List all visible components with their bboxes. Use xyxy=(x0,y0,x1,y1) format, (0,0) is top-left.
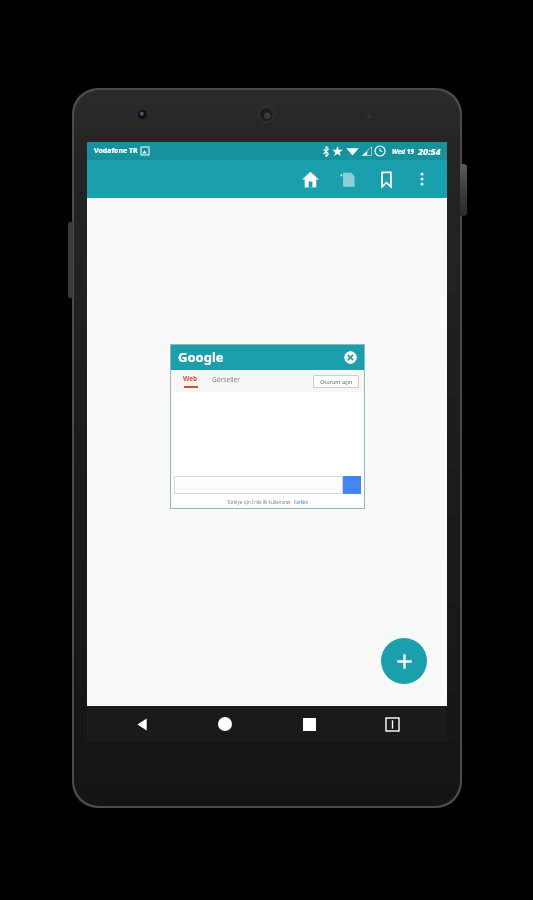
button[interactable]: Add bookmark xyxy=(331,162,365,196)
button[interactable]: Görseller xyxy=(212,375,240,384)
staticText: Wed 19 xyxy=(392,147,415,156)
button[interactable]: Back xyxy=(114,706,170,742)
button[interactable]: More options xyxy=(405,162,439,196)
staticText: Farklılı xyxy=(294,499,308,505)
button[interactable] xyxy=(174,476,343,494)
button[interactable]: Google xyxy=(170,344,365,509)
staticText: Oturum açın xyxy=(320,378,353,385)
staticText: Türkiye için İr'de ilk kullanarak xyxy=(227,499,291,505)
staticText: 20:54 xyxy=(418,145,441,157)
button[interactable]: Close xyxy=(344,351,357,364)
staticText: Web xyxy=(183,374,198,383)
button[interactable]: Home xyxy=(293,162,327,196)
button[interactable]: Oturum açın xyxy=(313,375,359,388)
button[interactable]: Split screen xyxy=(364,706,420,742)
staticText: Vodafone TR xyxy=(94,146,138,156)
button[interactable]: Bookmarks xyxy=(369,162,403,196)
button[interactable]: Home xyxy=(197,706,253,742)
staticText: Google xyxy=(178,348,224,366)
button[interactable]: Recents xyxy=(281,706,337,742)
button[interactable]: Web xyxy=(183,374,198,388)
button[interactable]: Add xyxy=(381,638,427,684)
